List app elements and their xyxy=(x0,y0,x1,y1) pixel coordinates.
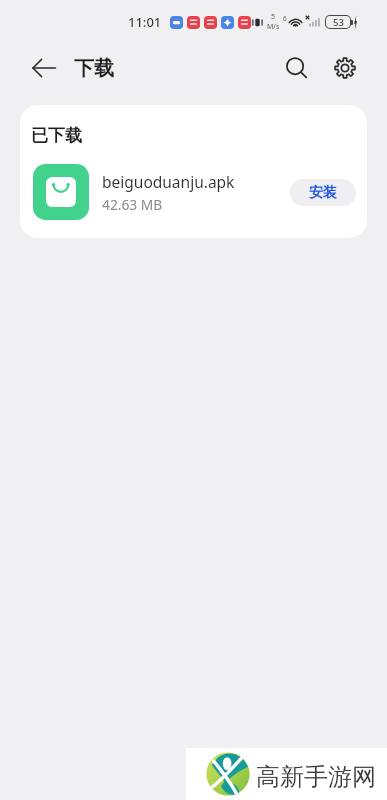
button[interactable]: Settings xyxy=(322,45,368,91)
button[interactable]: Search xyxy=(274,45,320,91)
staticText: 11:01 xyxy=(128,13,162,31)
staticText: M/s xyxy=(267,22,280,32)
staticText: beiguoduanju.apk xyxy=(102,171,235,192)
staticText: 42.63 MB xyxy=(102,195,163,214)
staticText: 6 xyxy=(283,14,287,23)
staticText: 已下载 xyxy=(31,125,82,146)
staticText: 5 xyxy=(271,12,276,22)
button[interactable]: 安装 xyxy=(290,179,356,206)
button[interactable]: beiguoduanju.apk xyxy=(20,154,367,230)
button[interactable]: Back xyxy=(21,45,67,91)
staticText: 高新手游网 xyxy=(256,762,376,792)
staticText: 53 xyxy=(333,16,344,28)
staticText: 安装 xyxy=(309,184,337,202)
staticText: 下载 xyxy=(74,56,114,81)
